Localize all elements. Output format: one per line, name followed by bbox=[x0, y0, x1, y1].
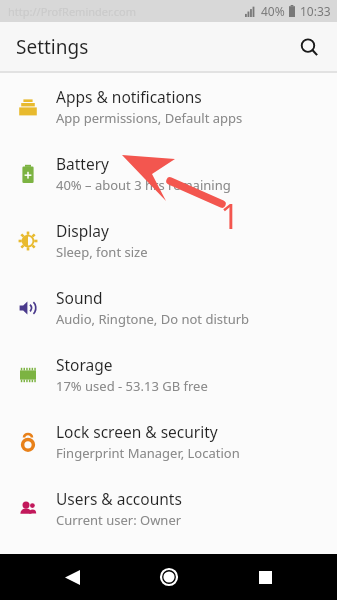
staticText: Fingerprint Manager, Location bbox=[56, 444, 240, 462]
staticText: Display bbox=[56, 220, 109, 241]
staticText: 17% used - 53.13 GB free bbox=[56, 377, 208, 395]
button[interactable]: Home bbox=[149, 557, 189, 597]
button[interactable]: Battery bbox=[0, 140, 337, 207]
staticText: 40% – about 3 hrs remaining bbox=[56, 176, 231, 194]
staticText: Apps & notifications bbox=[56, 86, 202, 107]
button[interactable]: Sound bbox=[0, 274, 337, 341]
staticText: Audio, Ringtone, Do not disturb bbox=[56, 310, 250, 328]
staticText: 1 bbox=[220, 193, 240, 239]
button[interactable]: Lock screen & security bbox=[0, 408, 337, 475]
button[interactable]: Recent apps bbox=[245, 557, 285, 597]
staticText: App permissions, Default apps bbox=[56, 109, 243, 127]
staticText: Lock screen & security bbox=[56, 421, 218, 442]
staticText: http://ProfReminder.com bbox=[8, 4, 136, 19]
staticText: 40% bbox=[261, 3, 285, 19]
button[interactable]: Apps & notifications bbox=[0, 73, 337, 140]
staticText: Users & accounts bbox=[56, 488, 182, 509]
staticText: 10:33 bbox=[300, 3, 331, 19]
staticText: Sleep, font size bbox=[56, 243, 148, 261]
staticText: Settings bbox=[16, 34, 89, 60]
staticText: Sound bbox=[56, 287, 103, 308]
staticText: Battery bbox=[56, 153, 110, 174]
button[interactable]: Storage bbox=[0, 341, 337, 408]
staticText: Current user: Owner bbox=[56, 511, 182, 529]
button[interactable]: Display bbox=[0, 207, 337, 274]
button[interactable]: Back bbox=[52, 557, 92, 597]
button[interactable]: Search bbox=[289, 27, 329, 67]
button[interactable]: Users & accounts bbox=[0, 475, 337, 542]
staticText: Storage bbox=[56, 354, 113, 375]
